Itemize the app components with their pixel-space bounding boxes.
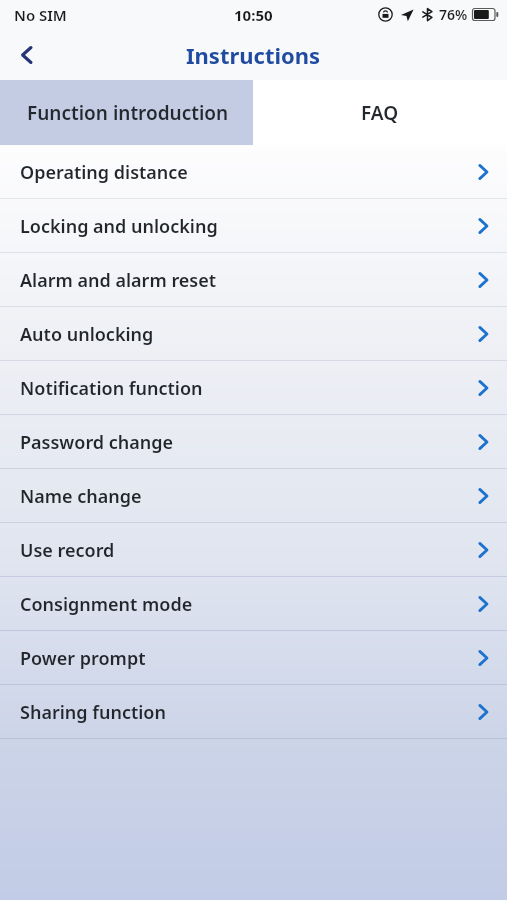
staticText: 10:50 — [234, 5, 273, 25]
staticText: No SIM — [14, 5, 67, 25]
button[interactable]: Operating distance — [0, 145, 507, 199]
button[interactable]: FAQ — [253, 80, 507, 145]
staticText: Use record — [20, 538, 115, 563]
staticText: Consignment mode — [20, 592, 193, 617]
button[interactable]: Use record — [0, 523, 507, 577]
staticText: Alarm and alarm reset — [20, 268, 217, 293]
button[interactable]: Sharing function — [0, 685, 507, 739]
staticText: Auto unlocking — [20, 322, 154, 347]
staticText: Function introduction — [27, 100, 229, 126]
staticText: Operating distance — [20, 160, 188, 185]
staticText: Instructions — [186, 40, 321, 70]
staticText: Name change — [20, 484, 142, 509]
button[interactable]: Back — [0, 29, 54, 80]
staticText: Sharing function — [20, 700, 166, 725]
staticText: 76% — [439, 5, 468, 24]
staticText: FAQ — [361, 100, 399, 126]
button[interactable]: Function introduction — [0, 80, 253, 145]
button[interactable]: Name change — [0, 469, 507, 523]
button[interactable]: Power prompt — [0, 631, 507, 685]
button[interactable]: Alarm and alarm reset — [0, 253, 507, 307]
button[interactable]: Consignment mode — [0, 577, 507, 631]
staticText: Power prompt — [20, 646, 146, 671]
staticText: Locking and unlocking — [20, 214, 218, 239]
staticText: Password change — [20, 430, 174, 455]
button[interactable]: Password change — [0, 415, 507, 469]
button[interactable]: Locking and unlocking — [0, 199, 507, 253]
staticText: Notification function — [20, 376, 203, 401]
button[interactable]: Auto unlocking — [0, 307, 507, 361]
button[interactable]: Notification function — [0, 361, 507, 415]
